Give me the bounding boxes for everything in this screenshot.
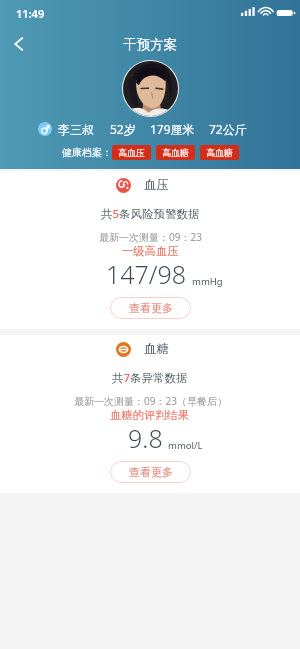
staticText: 高血糖 (162, 147, 189, 158)
staticText: 179厘米 (150, 121, 195, 137)
staticText: mmol/L (168, 439, 203, 452)
staticText: 共5条风险预警数据 (101, 206, 200, 222)
button[interactable]: 高血压 (112, 145, 151, 160)
staticText: 最新一次测量：09：23（早餐后） (74, 394, 227, 408)
staticText: 72公斤 (209, 121, 247, 137)
staticText: 一级高血压 (122, 244, 179, 258)
button[interactable]: 查看更多 (110, 297, 191, 319)
staticText: 高血压 (118, 147, 145, 158)
staticText: 11:49 (16, 6, 45, 21)
staticText: 查看更多 (129, 465, 173, 479)
staticText: 血糖 (144, 341, 169, 357)
staticText: 高血糖 (206, 147, 233, 158)
button[interactable]: Back (4, 29, 34, 59)
button[interactable]: 高血糖 (200, 145, 239, 160)
staticText: mmHg (192, 275, 223, 288)
staticText: 9.8 (128, 421, 163, 455)
staticText: 52岁 (110, 121, 136, 137)
staticText: 血糖的评判结果 (110, 408, 190, 422)
staticText: 查看更多 (129, 301, 173, 315)
staticText: 共7条异常数据 (112, 370, 188, 386)
staticText: 血压 (144, 177, 169, 193)
staticText: 健康档案： (62, 146, 112, 159)
staticText: 147/98 (106, 257, 187, 291)
staticText: 最新一次测量：09：23 (99, 230, 202, 244)
button[interactable]: 查看更多 (110, 461, 191, 483)
staticText: 干预方案 (123, 36, 177, 53)
button[interactable]: 高血糖 (156, 145, 195, 160)
staticText: 李三叔 (58, 122, 94, 137)
